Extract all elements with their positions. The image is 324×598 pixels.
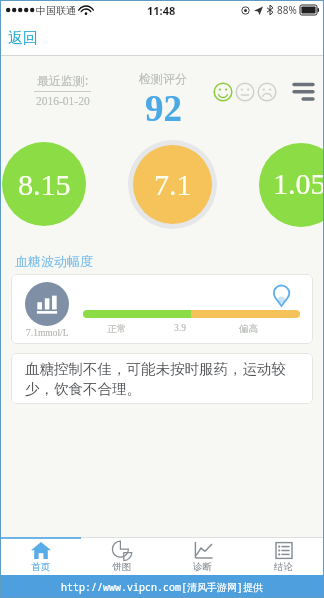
button[interactable]: 结论	[243, 537, 324, 575]
staticText: 诊断	[193, 561, 212, 573]
button[interactable]: 饼图	[81, 537, 162, 575]
button[interactable]: Bad mood	[257, 82, 277, 102]
button[interactable]: Menu	[292, 80, 316, 102]
staticText: 血糖控制不佳，可能未按时服药，运动较少，饮食不合理。	[25, 360, 291, 398]
staticText: 2016-01-20	[36, 95, 90, 108]
staticText: 11:48	[147, 3, 176, 18]
staticText: 结论	[274, 561, 293, 573]
button[interactable]: 首页	[0, 537, 81, 575]
button[interactable]: Good mood	[213, 82, 233, 102]
staticText: 8.15	[18, 168, 71, 201]
staticText: 92	[145, 88, 182, 129]
staticText: 返回	[8, 29, 38, 48]
button[interactable]: 8.15	[2, 142, 86, 226]
staticText: 饼图	[112, 561, 131, 573]
staticText: 血糖波动幅度	[15, 253, 93, 269]
staticText: 正常	[107, 323, 126, 335]
button[interactable]: 返回	[3, 24, 43, 53]
button[interactable]: 诊断	[162, 537, 243, 575]
staticText: 1.05	[273, 167, 324, 200]
button[interactable]: Neutral mood	[235, 82, 255, 102]
button[interactable]: 7.1	[133, 145, 212, 224]
staticText: 中国联通	[36, 4, 76, 17]
staticText: 3.9	[174, 323, 186, 334]
staticText: 偏高	[239, 323, 258, 335]
staticText: 7.1	[154, 168, 192, 201]
other: Current level marker	[273, 284, 290, 307]
staticText: http://www.vipcn.com[清风手游网]提供	[61, 580, 263, 594]
staticText: 检测评分	[139, 71, 187, 86]
staticText: 7.1mmol/L	[26, 328, 69, 339]
staticText: 88%	[277, 3, 297, 17]
staticText: 首页	[31, 561, 50, 573]
button[interactable]: 1.05	[259, 143, 324, 227]
button[interactable]: Glucose chart	[25, 282, 69, 326]
staticText: 最近监测:	[37, 72, 89, 88]
